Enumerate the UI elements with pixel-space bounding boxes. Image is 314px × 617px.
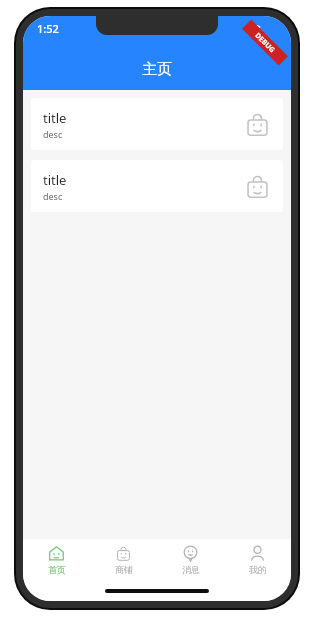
staticText: 首页 xyxy=(48,564,66,575)
staticText: 主页 xyxy=(142,60,172,79)
staticText: 商铺 xyxy=(115,564,133,575)
staticText: title xyxy=(43,109,67,127)
staticText: 1:52 xyxy=(37,21,59,36)
staticText: 消息 xyxy=(182,564,200,575)
button[interactable]: Profile xyxy=(224,545,291,575)
button[interactable]: Messages xyxy=(157,545,224,575)
staticText: desc xyxy=(43,190,63,202)
staticText: desc xyxy=(43,128,63,140)
staticText: title xyxy=(43,171,67,189)
staticText: 我的 xyxy=(249,564,267,575)
button[interactable]: Shop xyxy=(90,545,157,575)
button[interactable]: title xyxy=(31,98,283,150)
button[interactable]: Home xyxy=(23,545,90,575)
button[interactable]: title xyxy=(31,160,283,212)
staticText: DEBUG xyxy=(253,31,277,55)
